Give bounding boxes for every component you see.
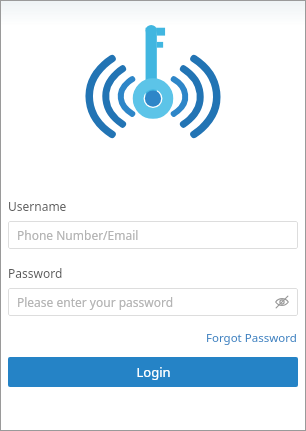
staticText: Login (136, 363, 171, 381)
staticText: Password (8, 265, 63, 281)
button[interactable]: Login (8, 357, 298, 387)
button[interactable]: Phone Number/Email (8, 221, 298, 249)
staticText: Username (8, 198, 67, 214)
staticText: Phone Number/Email (17, 227, 139, 243)
button[interactable]: Show password (272, 292, 292, 312)
staticText: Please enter your password (17, 294, 174, 310)
button[interactable]: Please enter your password (8, 288, 298, 316)
staticText: Forgot Password (206, 330, 297, 346)
button[interactable]: Forgot Password (197, 328, 306, 348)
